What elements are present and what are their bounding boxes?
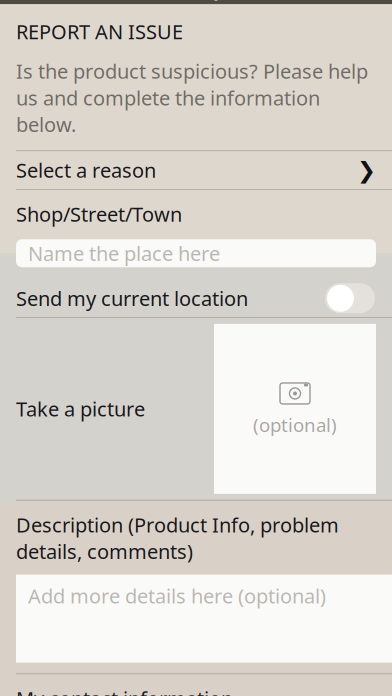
button[interactable]: Add more details here (optional)	[0, 575, 392, 663]
button[interactable]: Send my current location	[324, 282, 376, 314]
staticText: My contact information	[16, 685, 233, 696]
staticText: New report	[129, 0, 262, 1]
staticText: Take a picture	[16, 396, 145, 422]
staticText: Add more details here (optional)	[28, 583, 326, 609]
staticText: ❯	[357, 157, 376, 183]
button[interactable]: Take a picture	[214, 324, 376, 494]
staticText: (optional)	[253, 412, 337, 437]
button[interactable]: Select a reason	[0, 151, 392, 189]
staticText: Description (Product Info, problem detai…	[16, 511, 339, 565]
staticText: Select a reason	[16, 157, 156, 183]
staticText: REPORT AN ISSUE	[16, 18, 183, 45]
staticText: Is the product suspicious? Please help u…	[16, 58, 368, 137]
staticText: Shop/Street/Town	[16, 201, 182, 227]
staticText: Name the place here	[28, 240, 220, 267]
button[interactable]: Name the place here	[0, 239, 392, 267]
staticText: Send my current location	[16, 285, 248, 312]
